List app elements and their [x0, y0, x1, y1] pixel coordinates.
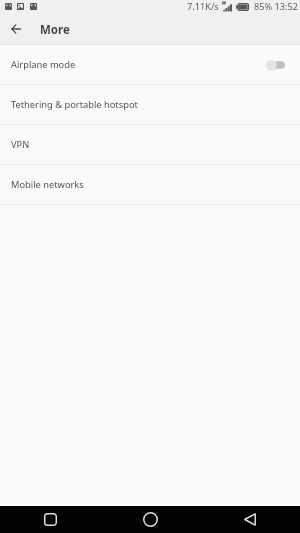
staticText: Airplane mode [11, 58, 76, 71]
button[interactable]: Airplane mode toggle [266, 58, 285, 72]
staticText: VPN [11, 138, 30, 151]
button[interactable]: Airplane mode [0, 45, 300, 84]
staticText: 7.11K/s [187, 0, 219, 13]
button[interactable]: Back [200, 506, 300, 533]
button[interactable]: Tethering & portable hotspot [0, 85, 300, 124]
staticText: Tethering & portable hotspot [11, 98, 138, 111]
button[interactable]: Navigate up [0, 16, 32, 44]
staticText: 85% 13:52 [254, 0, 299, 13]
button[interactable]: VPN [0, 125, 300, 164]
staticText: Mobile networks [11, 178, 84, 191]
button[interactable]: Mobile networks [0, 165, 300, 204]
button[interactable]: Recent apps [0, 506, 100, 533]
staticText: More [40, 22, 70, 38]
button[interactable]: Home [100, 506, 200, 533]
